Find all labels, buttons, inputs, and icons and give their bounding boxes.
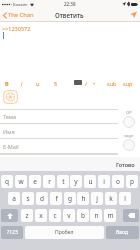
- button[interactable]: m: [104, 209, 116, 222]
- staticText: u: [36, 80, 40, 87]
- staticText: ?123: [7, 229, 18, 236]
- staticText: sub: [107, 80, 117, 87]
- button[interactable]: •: [92, 79, 97, 88]
- button[interactable]: Ввод: [106, 226, 139, 239]
- staticText: r: [48, 177, 51, 186]
- staticText: Тема: [3, 113, 17, 120]
- button[interactable]: z: [21, 209, 33, 222]
- button[interactable]: i: [98, 175, 110, 188]
- staticText: sage: [124, 133, 134, 139]
- staticText: l: [124, 194, 126, 203]
- button[interactable]: n: [90, 209, 102, 222]
- button[interactable]: i: [20, 79, 24, 88]
- staticText: /: [85, 80, 88, 87]
- staticText: m: [107, 211, 114, 220]
- staticText: •: [93, 80, 96, 87]
- button[interactable]: o: [112, 175, 124, 188]
- staticText: v: [67, 211, 71, 220]
- staticText: k: [109, 194, 113, 203]
- button[interactable]: The Chan: [0, 10, 36, 20]
- button[interactable]: k: [105, 192, 117, 205]
- staticText: E-Mail: [3, 143, 19, 150]
- button[interactable]: Готово: [111, 158, 140, 171]
- button[interactable]: q: [1, 175, 13, 188]
- button[interactable]: g: [64, 192, 76, 205]
- button[interactable]: e: [29, 175, 41, 188]
- staticText: b: [81, 211, 85, 220]
- button[interactable]: u: [35, 79, 41, 88]
- button[interactable]: x: [35, 209, 47, 222]
- staticText: w: [18, 177, 24, 186]
- staticText: o: [116, 177, 120, 186]
- button[interactable]: Attach image: [3, 90, 18, 104]
- staticText: p: [130, 177, 134, 186]
- button[interactable]: B: [4, 79, 10, 88]
- button[interactable]: Пробел: [25, 226, 104, 239]
- staticText: i: [21, 80, 23, 87]
- button[interactable]: s: [22, 192, 34, 205]
- staticText: u: [88, 177, 93, 186]
- button[interactable]: a: [8, 192, 20, 205]
- button[interactable]: OP: [120, 110, 138, 130]
- button[interactable]: w: [15, 175, 27, 188]
- staticText: g: [68, 194, 72, 203]
- staticText: OP: [126, 110, 132, 116]
- button[interactable]: >>1230572: [2, 25, 31, 32]
- staticText: Имя: [3, 128, 15, 135]
- button[interactable]: Тема: [0, 109, 118, 124]
- button[interactable]: ?123: [1, 226, 23, 239]
- staticText: Ответить: [55, 11, 84, 19]
- staticText: s: [26, 194, 30, 203]
- button[interactable]: r: [43, 175, 55, 188]
- button[interactable]: Spoiler: [74, 80, 82, 85]
- staticText: i: [103, 177, 105, 186]
- button[interactable]: sage: [120, 133, 138, 153]
- button[interactable]: p: [126, 175, 138, 188]
- button[interactable]: Имя: [0, 124, 118, 139]
- staticText: z: [25, 211, 29, 220]
- staticText: e: [33, 177, 37, 186]
- staticText: x: [39, 211, 43, 220]
- staticText: S: [54, 80, 58, 87]
- staticText: 22:38: [64, 1, 76, 7]
- staticText: y: [74, 177, 78, 186]
- button[interactable]: d: [36, 192, 48, 205]
- staticText: a: [12, 194, 16, 203]
- staticText: Ввод: [116, 229, 129, 236]
- button[interactable]: b: [77, 209, 89, 222]
- button[interactable]: /: [84, 79, 89, 88]
- staticText: sup: [123, 80, 133, 87]
- staticText: f: [55, 194, 58, 203]
- button[interactable]: E-Mail: [0, 139, 118, 154]
- staticText: j: [96, 194, 98, 203]
- button[interactable]: l: [119, 192, 131, 205]
- button[interactable]: j: [91, 192, 103, 205]
- button[interactable]: u: [84, 175, 96, 188]
- staticText: Пробел: [55, 229, 74, 236]
- button[interactable]: Send: [127, 9, 140, 20]
- button[interactable]: Shift: [1, 209, 18, 222]
- staticText: The Chan: [8, 11, 34, 19]
- staticText: t: [62, 177, 65, 186]
- button[interactable]: c: [49, 209, 61, 222]
- staticText: q: [5, 177, 9, 186]
- button[interactable]: h: [77, 192, 89, 205]
- button[interactable]: sup: [122, 79, 134, 88]
- staticText: B: [5, 80, 9, 87]
- button[interactable]: f: [50, 192, 62, 205]
- staticText: d: [40, 194, 44, 203]
- button[interactable]: Backspace: [123, 209, 139, 222]
- button[interactable]: v: [63, 209, 75, 222]
- staticText: n: [94, 211, 99, 220]
- staticText: Билайн: [13, 2, 28, 7]
- button[interactable]: S: [53, 79, 59, 88]
- staticText: h: [81, 194, 86, 203]
- staticText: c: [53, 211, 57, 220]
- button[interactable]: y: [70, 175, 82, 188]
- button[interactable]: sub: [106, 79, 118, 88]
- button[interactable]: t: [57, 175, 69, 188]
